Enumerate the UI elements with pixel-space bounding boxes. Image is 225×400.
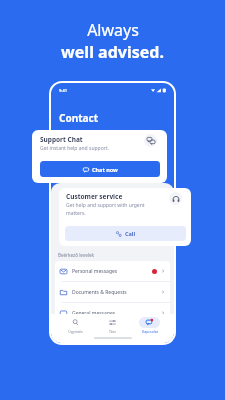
button[interactable]: Personal messages xyxy=(55,261,170,281)
button[interactable]: Chat xyxy=(144,134,157,147)
staticText: Customer service xyxy=(66,192,123,201)
staticText: Personal messages xyxy=(72,268,118,275)
staticText: Documents & Requests xyxy=(72,289,127,296)
button[interactable]: Support Chat xyxy=(32,130,167,183)
button[interactable]: General messages xyxy=(55,303,170,323)
staticText: Support Chat xyxy=(40,135,83,144)
button[interactable]: Customer support xyxy=(169,192,182,205)
staticText: 9:41 xyxy=(59,88,67,93)
button[interactable]: Documents & Requests xyxy=(55,282,170,302)
staticText: well advised. xyxy=(61,41,164,63)
staticText: General messages xyxy=(72,310,116,317)
button[interactable]: Ügyintéz xyxy=(57,314,94,334)
staticText: Contact xyxy=(59,111,98,125)
staticText: Társ xyxy=(109,329,116,334)
button[interactable]: Chat now xyxy=(40,161,160,177)
button[interactable]: Társ xyxy=(94,314,131,334)
button[interactable]: Call xyxy=(65,226,186,241)
staticText: Always xyxy=(87,19,139,41)
staticText: Kapcsolat xyxy=(142,329,158,334)
staticText: Get instant help and support. xyxy=(40,145,109,152)
staticText: Get help and support with urgent matters… xyxy=(66,202,148,216)
staticText: Ügyintéz xyxy=(68,329,83,334)
button[interactable]: Customer service xyxy=(59,188,191,246)
staticText: Beérkező levelek xyxy=(58,252,95,258)
button[interactable]: Kapcsolat xyxy=(131,314,168,334)
staticText: Call xyxy=(125,230,136,237)
staticText: Chat now xyxy=(92,166,118,173)
